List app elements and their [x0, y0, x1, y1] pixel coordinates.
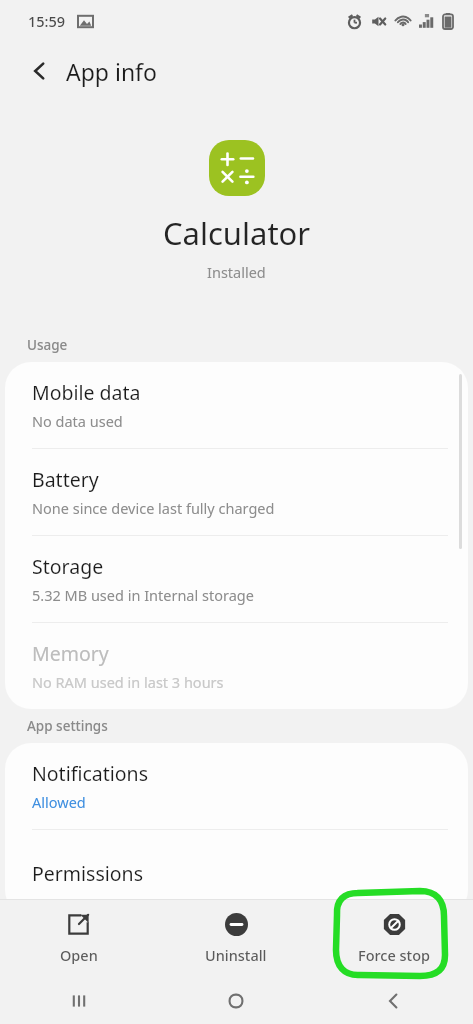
staticText: None since device last fully charged: [32, 498, 275, 518]
button[interactable]: Force stop: [315, 900, 473, 978]
staticText: App info: [66, 56, 157, 87]
button[interactable]: Battery: [5, 449, 468, 535]
button[interactable]: Permissions: [5, 830, 468, 916]
button[interactable]: Back: [315, 978, 473, 1024]
button[interactable]: Open: [0, 900, 157, 978]
staticText: Memory: [32, 640, 109, 667]
button[interactable]: Notifications: [5, 743, 468, 829]
staticText: Allowed: [32, 792, 86, 812]
button[interactable]: Back: [18, 49, 62, 93]
staticText: Calculator: [163, 212, 311, 254]
button[interactable]: Uninstall: [157, 900, 315, 978]
button[interactable]: Memory: [5, 623, 468, 709]
button[interactable]: Storage: [5, 536, 468, 622]
staticText: Permissions: [32, 860, 144, 887]
staticText: Notifications: [32, 760, 148, 787]
staticText: 15:59: [28, 11, 66, 31]
staticText: Battery: [32, 466, 99, 493]
staticText: Mobile data: [32, 379, 141, 406]
staticText: 5.32 MB used in Internal storage: [32, 585, 254, 605]
staticText: Uninstall: [205, 945, 267, 965]
button[interactable]: Recents: [0, 978, 157, 1024]
staticText: No RAM used in last 3 hours: [32, 672, 224, 692]
staticText: No data used: [32, 411, 123, 431]
staticText: Installed: [207, 262, 266, 282]
staticText: Usage: [27, 336, 68, 354]
staticText: Force stop: [358, 945, 431, 965]
button[interactable]: Mobile data: [5, 362, 468, 448]
button[interactable]: Home: [157, 978, 315, 1024]
staticText: App settings: [27, 717, 108, 735]
staticText: Open: [60, 945, 98, 965]
staticText: Storage: [32, 553, 104, 580]
